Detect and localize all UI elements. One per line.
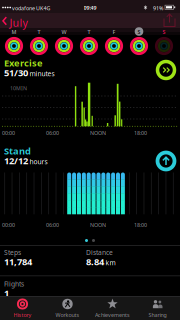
staticText: vodafone UK: [12, 5, 43, 12]
staticText: 18:00: [134, 129, 147, 137]
staticText: Stand: [4, 145, 31, 157]
staticText: hours: [29, 157, 47, 166]
staticText: F: [112, 28, 115, 35]
staticText: NOON: [90, 221, 106, 229]
staticText: 00:00: [2, 129, 15, 137]
staticText: S: [137, 28, 140, 35]
staticText: Distance: [86, 248, 113, 257]
button[interactable]: Day W: [52, 27, 76, 56]
staticText: Sharing: [148, 311, 166, 319]
button[interactable]: Day S: [127, 27, 151, 56]
staticText: Achievements: [95, 311, 130, 319]
staticText: 11,784: [4, 255, 32, 268]
button[interactable]: Share: [161, 13, 178, 29]
staticText: July: [9, 15, 27, 30]
staticText: 91%: [153, 5, 163, 12]
button[interactable]: Day S: [152, 27, 176, 56]
staticText: 1: [4, 287, 9, 299]
button[interactable]: Achievements: [90, 296, 135, 320]
staticText: km: [105, 258, 115, 267]
staticText: 06:00: [46, 221, 59, 229]
staticText: 4G: [43, 5, 50, 12]
staticText: 51/30: [4, 66, 28, 79]
button[interactable]: Workouts: [45, 296, 90, 320]
button[interactable]: Back to July: [2, 14, 30, 28]
staticText: 00:00: [2, 221, 15, 229]
button[interactable]: Day T: [77, 27, 101, 56]
staticText: minutes: [29, 69, 54, 78]
staticText: Steps: [4, 248, 21, 257]
staticText: 10MIN: [10, 85, 27, 92]
staticText: Exercise: [4, 57, 43, 69]
staticText: NOON: [90, 129, 106, 137]
staticText: History: [13, 311, 31, 319]
staticText: 09:49: [83, 4, 96, 11]
button[interactable]: History: [0, 296, 45, 320]
button[interactable]: Sharing: [135, 296, 180, 320]
staticText: 12/12: [4, 154, 28, 167]
button[interactable]: Day M: [2, 27, 26, 56]
staticText: W: [61, 28, 66, 35]
staticText: M: [11, 28, 16, 35]
staticText: Workouts: [55, 311, 79, 319]
button[interactable]: Day F: [102, 27, 126, 56]
button[interactable]: Day T: [27, 27, 51, 56]
staticText: 06:00: [46, 129, 59, 137]
staticText: S: [162, 28, 165, 35]
staticText: T: [87, 28, 90, 35]
staticText: T: [37, 28, 40, 35]
staticText: Flights: [4, 279, 24, 288]
staticText: 8.84: [86, 255, 104, 268]
staticText: 18:00: [134, 221, 147, 229]
